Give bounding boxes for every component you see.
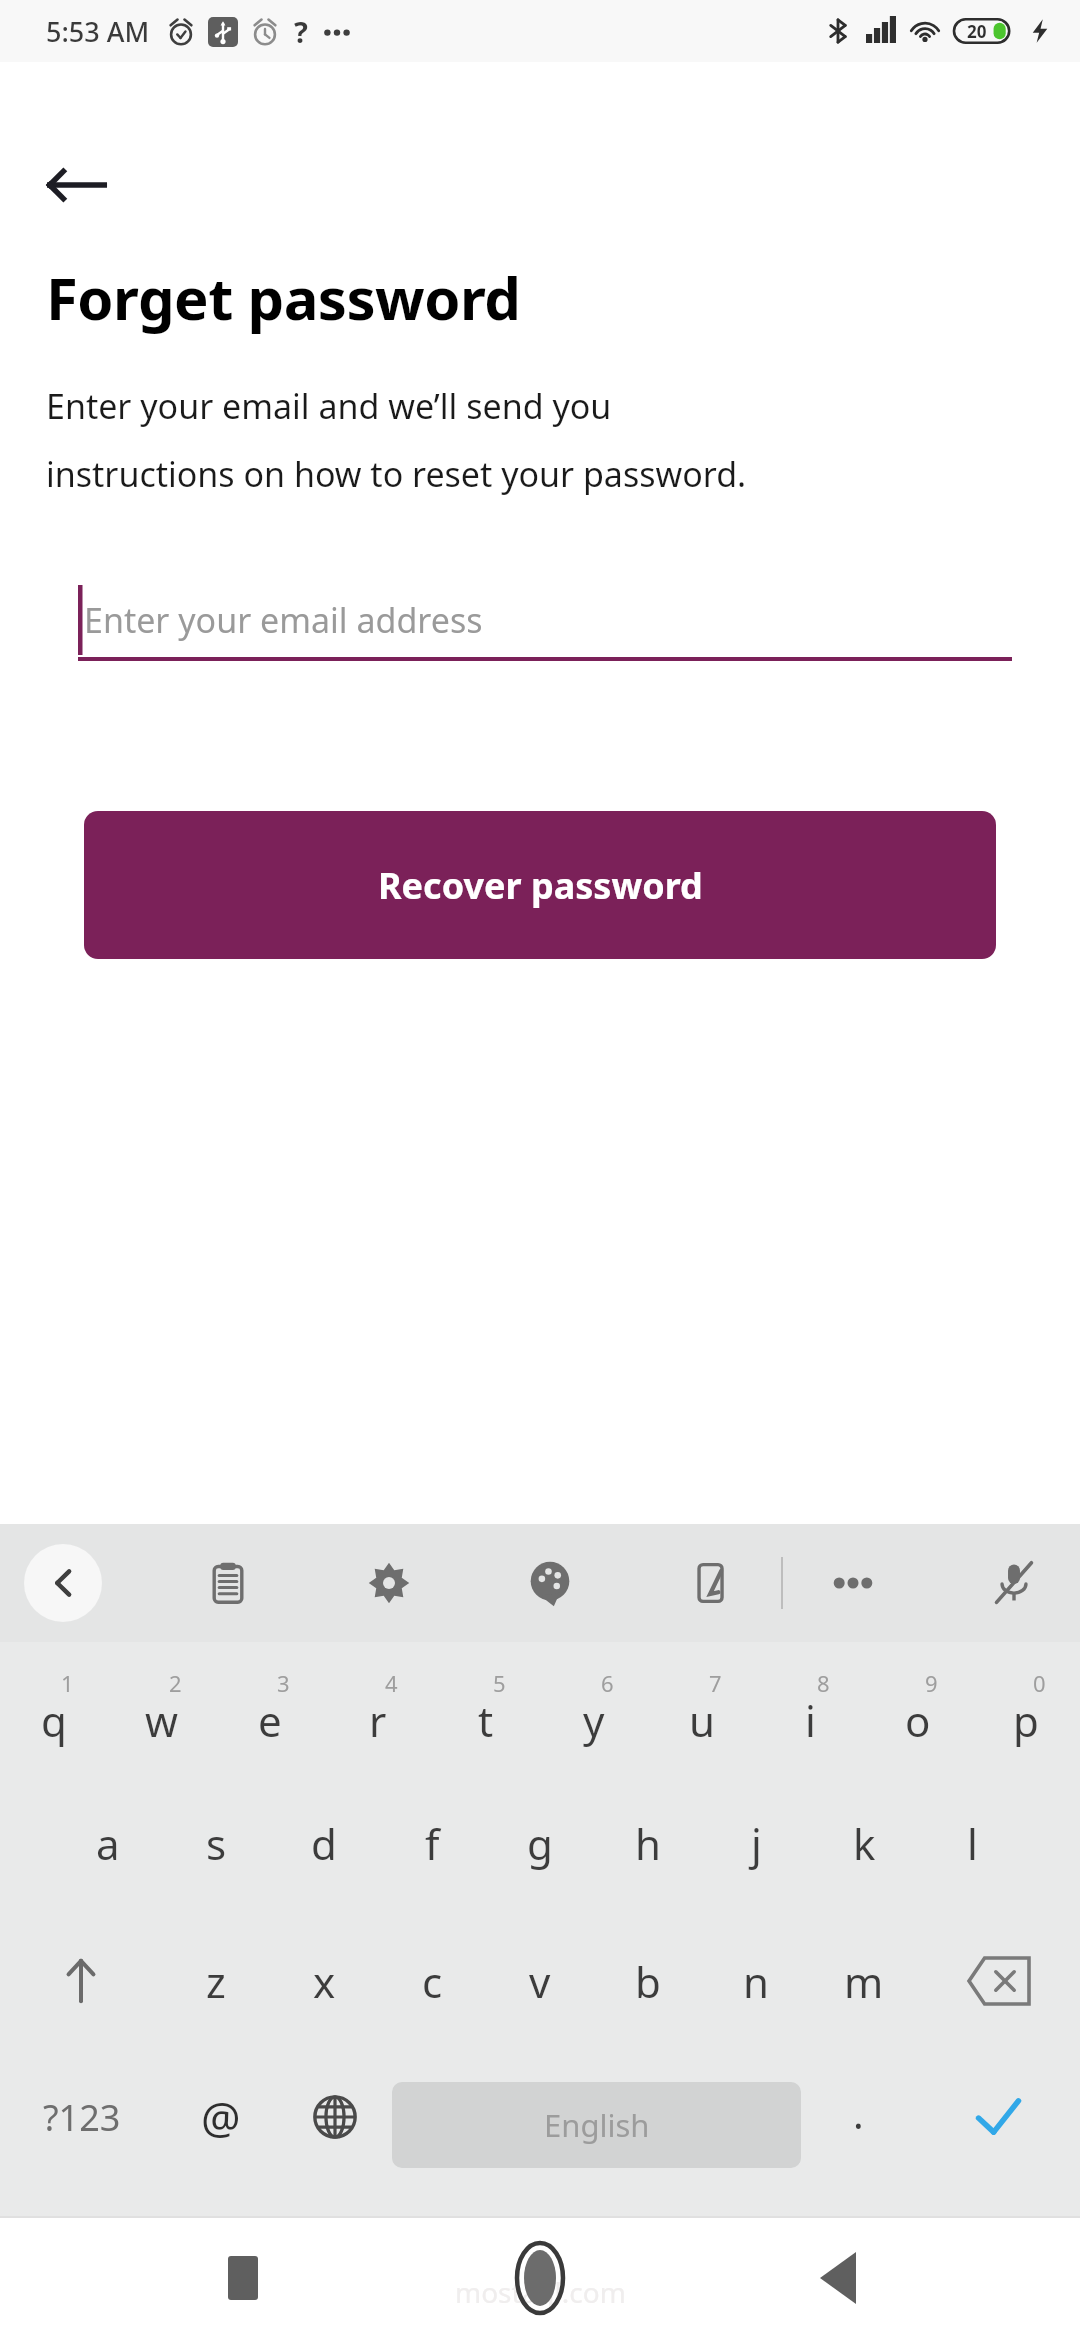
button[interactable]: Settings (353, 1547, 425, 1619)
staticText: v (529, 1953, 551, 2010)
staticText: 5 (493, 1668, 506, 1698)
staticText: u (689, 1692, 715, 1749)
button[interactable]: ?123 (0, 2056, 164, 2194)
staticText: c (422, 1953, 443, 2010)
button[interactable]: Back (783, 2223, 893, 2333)
button[interactable]: 3 (216, 1642, 324, 1780)
staticText: h (635, 1815, 661, 1872)
staticText: k (853, 1815, 876, 1872)
staticText: Enter your email address (84, 597, 483, 643)
staticText: Forget password (46, 258, 521, 337)
button[interactable]: x (270, 1918, 378, 2056)
button[interactable]: @ (164, 2056, 278, 2194)
staticText: 2 (169, 1668, 182, 1698)
button[interactable]: Collapse toolbar (24, 1544, 102, 1622)
staticText: r (369, 1692, 387, 1749)
button[interactable]: k (810, 1780, 918, 1918)
button[interactable]: Enter (915, 2056, 1080, 2194)
staticText: p (1013, 1692, 1039, 1749)
button[interactable]: Home (485, 2223, 595, 2333)
button[interactable]: Shift (0, 1918, 162, 2056)
staticText: @ (201, 2087, 241, 2147)
staticText: d (311, 1815, 337, 1872)
staticText: English (544, 2104, 650, 2146)
button[interactable]: Recents (188, 2223, 298, 2333)
staticText: 3 (277, 1668, 290, 1698)
staticText: 4 (385, 1668, 398, 1698)
button[interactable]: Voice input off (978, 1547, 1050, 1619)
button[interactable]: b (594, 1918, 702, 2056)
staticText: 7 (709, 1668, 722, 1698)
staticText: n (743, 1953, 769, 2010)
button[interactable]: 7 (648, 1642, 756, 1780)
button[interactable]: 8 (756, 1642, 864, 1780)
button[interactable]: Theme (514, 1547, 586, 1619)
button[interactable]: 5 (432, 1642, 540, 1780)
staticText: q (41, 1692, 67, 1749)
staticText: z (206, 1953, 226, 2010)
staticText: o (905, 1692, 931, 1749)
button[interactable]: 4 (324, 1642, 432, 1780)
button[interactable]: v (486, 1918, 594, 2056)
staticText: s (206, 1815, 227, 1872)
button[interactable]: d (270, 1780, 378, 1918)
staticText: Recover password (378, 861, 703, 910)
button[interactable]: 1 (0, 1642, 108, 1780)
button[interactable]: s (162, 1780, 270, 1918)
button[interactable]: h (594, 1780, 702, 1918)
button[interactable]: 6 (540, 1642, 648, 1780)
staticText: . (853, 2086, 864, 2140)
staticText: i (805, 1692, 816, 1749)
button[interactable]: l (918, 1780, 1026, 1918)
button[interactable]: Back (46, 148, 120, 222)
button[interactable]: English (392, 2082, 801, 2168)
staticText: y (583, 1692, 605, 1749)
staticText: ?123 (43, 2093, 121, 2142)
staticText: mostaql.com (455, 2273, 626, 2311)
button[interactable]: 9 (864, 1642, 972, 1780)
staticText: t (478, 1692, 494, 1749)
staticText: 1 (61, 1668, 74, 1698)
staticText: 20 (967, 20, 987, 43)
staticText: l (967, 1815, 978, 1872)
button[interactable]: c (378, 1918, 486, 2056)
staticText: 0 (1033, 1668, 1046, 1698)
staticText: g (527, 1815, 553, 1872)
staticText: Enter your email and we’ll send you inst… (46, 383, 747, 497)
button[interactable]: Handwriting (675, 1547, 747, 1619)
staticText: x (313, 1953, 336, 2010)
staticText: f (425, 1815, 440, 1872)
staticText: w (145, 1692, 179, 1749)
staticText: m (844, 1953, 884, 2010)
staticText: a (96, 1815, 120, 1872)
staticText: 6 (601, 1668, 614, 1698)
staticText: e (258, 1692, 282, 1749)
staticText: ? (294, 12, 308, 51)
staticText: 5:53 AM (46, 13, 150, 50)
button[interactable]: Clipboard (192, 1547, 264, 1619)
button[interactable]: m (810, 1918, 918, 2056)
button[interactable]: Change language (278, 2056, 392, 2194)
button[interactable]: j (702, 1780, 810, 1918)
staticText: j (751, 1815, 762, 1872)
staticText: 8 (817, 1668, 830, 1698)
staticText: 9 (925, 1668, 938, 1698)
button[interactable]: Recover password (84, 811, 996, 959)
staticText: b (635, 1953, 661, 2010)
button[interactable]: 0 (972, 1642, 1080, 1780)
button[interactable]: Enter your email address (78, 579, 1012, 661)
button[interactable]: f (378, 1780, 486, 1918)
button[interactable]: More options (817, 1547, 889, 1619)
button[interactable]: a (54, 1780, 162, 1918)
button[interactable]: 2 (108, 1642, 216, 1780)
button[interactable]: Backspace (918, 1918, 1080, 2056)
button[interactable]: g (486, 1780, 594, 1918)
button[interactable]: z (162, 1918, 270, 2056)
button[interactable]: n (702, 1918, 810, 2056)
button[interactable]: . (801, 2056, 915, 2194)
